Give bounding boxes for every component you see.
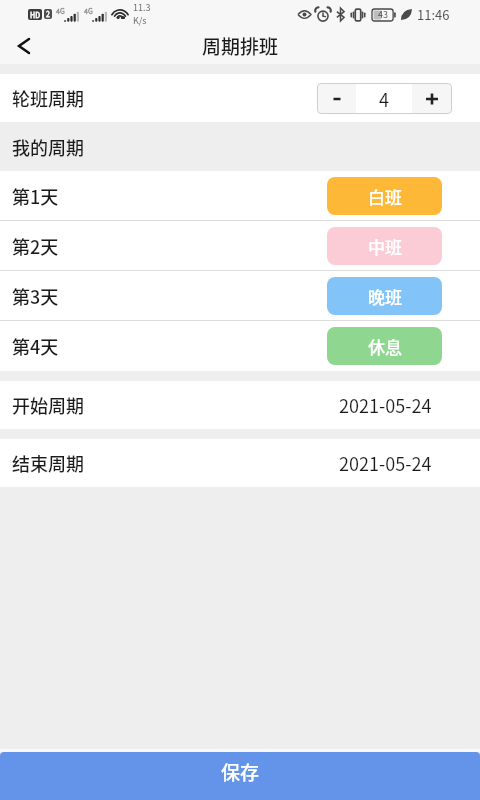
button[interactable]: 第4天 — [0, 321, 480, 371]
button[interactable]: 保存 — [0, 752, 480, 800]
staticText: 4G — [84, 6, 93, 16]
button[interactable]: Increase — [412, 83, 451, 114]
staticText: 周期排班 — [202, 32, 279, 60]
staticText: 第2天 — [12, 233, 59, 259]
staticText: 43 — [378, 8, 388, 21]
staticText: 白班 — [368, 184, 402, 209]
staticText: 轮班周期 — [12, 85, 84, 111]
button[interactable]: Back — [0, 28, 40, 64]
staticText: HD — [30, 10, 41, 20]
staticText: 4G — [56, 6, 65, 16]
button[interactable]: 开始周期 — [0, 381, 480, 429]
button[interactable]: Decrease — [317, 83, 356, 114]
button[interactable]: 轮班周期 — [0, 74, 480, 122]
staticText: 开始周期 — [12, 392, 84, 418]
button[interactable]: 第3天 — [0, 271, 480, 321]
staticText: 休息 — [368, 334, 402, 359]
button[interactable]: 第2天 — [0, 221, 480, 271]
staticText: 2021-05-24 — [339, 450, 432, 476]
staticText: 保存 — [221, 758, 260, 786]
staticText: 第4天 — [12, 333, 59, 359]
staticText: K/s — [133, 14, 147, 27]
staticText: 晚班 — [368, 284, 402, 309]
staticText: 4 — [379, 86, 389, 112]
staticText: 中班 — [368, 234, 402, 259]
staticText: 2021-05-24 — [339, 392, 432, 418]
button[interactable]: 结束周期 — [0, 439, 480, 487]
staticText: 11:46 — [417, 5, 450, 24]
staticText: 结束周期 — [12, 450, 84, 476]
staticText: 第3天 — [12, 283, 59, 309]
staticText: 我的周期 — [12, 134, 84, 160]
staticText: 第1天 — [12, 183, 59, 209]
button[interactable]: 第1天 — [0, 171, 480, 221]
staticText: 11.3 — [133, 1, 151, 14]
staticText: 2 — [46, 9, 50, 19]
